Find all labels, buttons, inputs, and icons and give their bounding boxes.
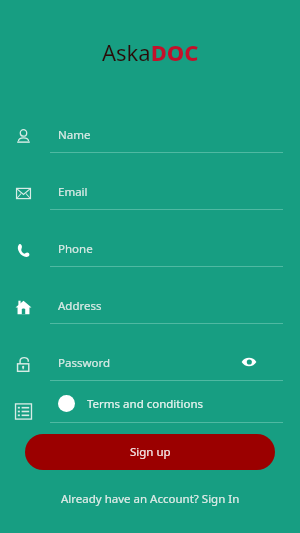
button[interactable]: Already have an Account? Sign In (53, 488, 248, 510)
other: Password (15, 356, 32, 373)
staticText: AskaDOC (102, 37, 199, 67)
staticText: Phone (58, 241, 93, 257)
other: Email (15, 185, 32, 202)
staticText: Name (58, 127, 91, 143)
other: Terms list (14, 402, 33, 421)
button[interactable]: Show password (241, 355, 257, 369)
staticText: Password (58, 355, 111, 371)
other: Phone (15, 242, 32, 259)
staticText: Email (58, 184, 88, 200)
staticText: Already have an Account? Sign In (61, 491, 240, 507)
button[interactable]: Email (0, 171, 300, 228)
button[interactable]: Address (0, 285, 300, 342)
button[interactable]: Name (0, 114, 300, 171)
button[interactable]: Phone (0, 228, 300, 285)
other: Address (15, 299, 32, 316)
button[interactable]: Password (0, 342, 300, 399)
staticText: Sign up (130, 444, 171, 460)
staticText: Address (58, 298, 102, 314)
other: Name (15, 128, 32, 145)
button[interactable]: Terms and conditions (58, 395, 204, 412)
button[interactable]: Sign up (25, 434, 275, 470)
staticText: Terms and conditions (87, 396, 204, 412)
